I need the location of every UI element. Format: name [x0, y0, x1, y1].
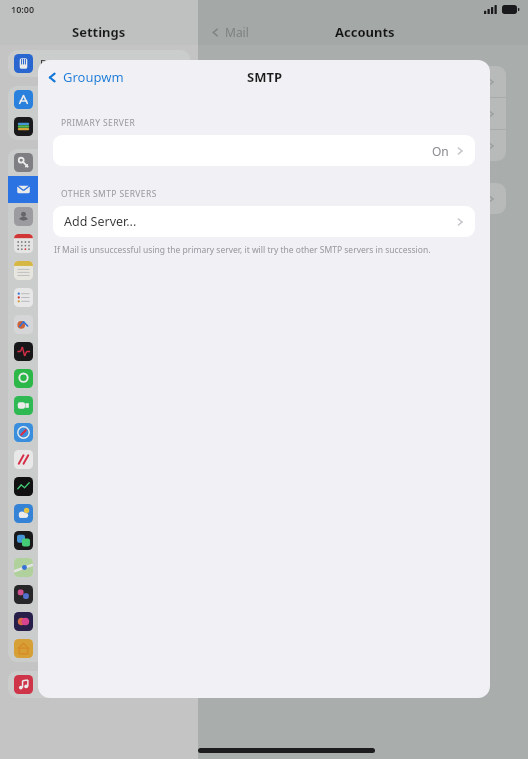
button[interactable]: Mail — [8, 176, 190, 203]
button[interactable] — [220, 66, 506, 97]
button[interactable]: Maps — [8, 554, 190, 581]
button[interactable]: Mail — [210, 24, 249, 40]
button[interactable]: FaceTime — [8, 392, 190, 419]
button[interactable]: Books — [8, 608, 190, 635]
staticText: Add Server... — [64, 213, 137, 230]
button[interactable]: Safari — [8, 419, 190, 446]
button[interactable]: Health — [8, 338, 190, 365]
staticText: OTHER SMTP SERVERS — [61, 188, 157, 200]
staticText: Calendar — [40, 236, 87, 251]
staticText: PRIMARY SERVER — [61, 117, 136, 129]
button[interactable]: Weather — [8, 500, 190, 527]
staticText: Contacts — [40, 209, 86, 224]
button[interactable]: Add Server... — [53, 206, 475, 237]
staticText: Privacy & Security — [40, 56, 132, 71]
button[interactable]: Notes — [8, 257, 190, 284]
button[interactable]: Translate — [8, 527, 190, 554]
button[interactable]: News — [8, 446, 190, 473]
button[interactable]: App Store — [8, 86, 190, 113]
button[interactable] — [220, 98, 506, 129]
button[interactable]: Groupwm — [46, 68, 124, 86]
button[interactable]: Messages — [8, 365, 190, 392]
button[interactable]: Home — [8, 635, 190, 662]
staticText: Mail — [40, 182, 62, 197]
button[interactable]: Contacts — [8, 203, 190, 230]
staticText: On — [432, 143, 449, 159]
button[interactable]: Stocks — [8, 473, 190, 500]
button[interactable]: Shortcuts — [8, 581, 190, 608]
staticText: Settings — [72, 23, 126, 41]
button[interactable]: Reminders — [8, 284, 190, 311]
staticText: If Mail is unsuccessful using the primar… — [54, 244, 474, 256]
button[interactable] — [220, 183, 506, 214]
button[interactable]: Calendar — [8, 230, 190, 257]
staticText: Wallet — [40, 119, 73, 134]
button[interactable] — [220, 130, 506, 161]
button[interactable]: Privacy & Security — [8, 50, 190, 77]
staticText: 10:00 — [11, 3, 35, 15]
button[interactable]: Freeform — [8, 311, 190, 338]
button[interactable]: Passwords — [8, 149, 190, 176]
button[interactable]: Wallet — [8, 113, 190, 140]
button[interactable]: Music — [8, 671, 190, 698]
button[interactable]: On — [53, 135, 475, 166]
staticText: Passwords — [40, 155, 96, 170]
staticText: SMTP — [247, 68, 282, 86]
staticText: Mail — [225, 24, 249, 40]
staticText: Groupwm — [63, 68, 124, 86]
staticText: Accounts — [335, 23, 395, 41]
